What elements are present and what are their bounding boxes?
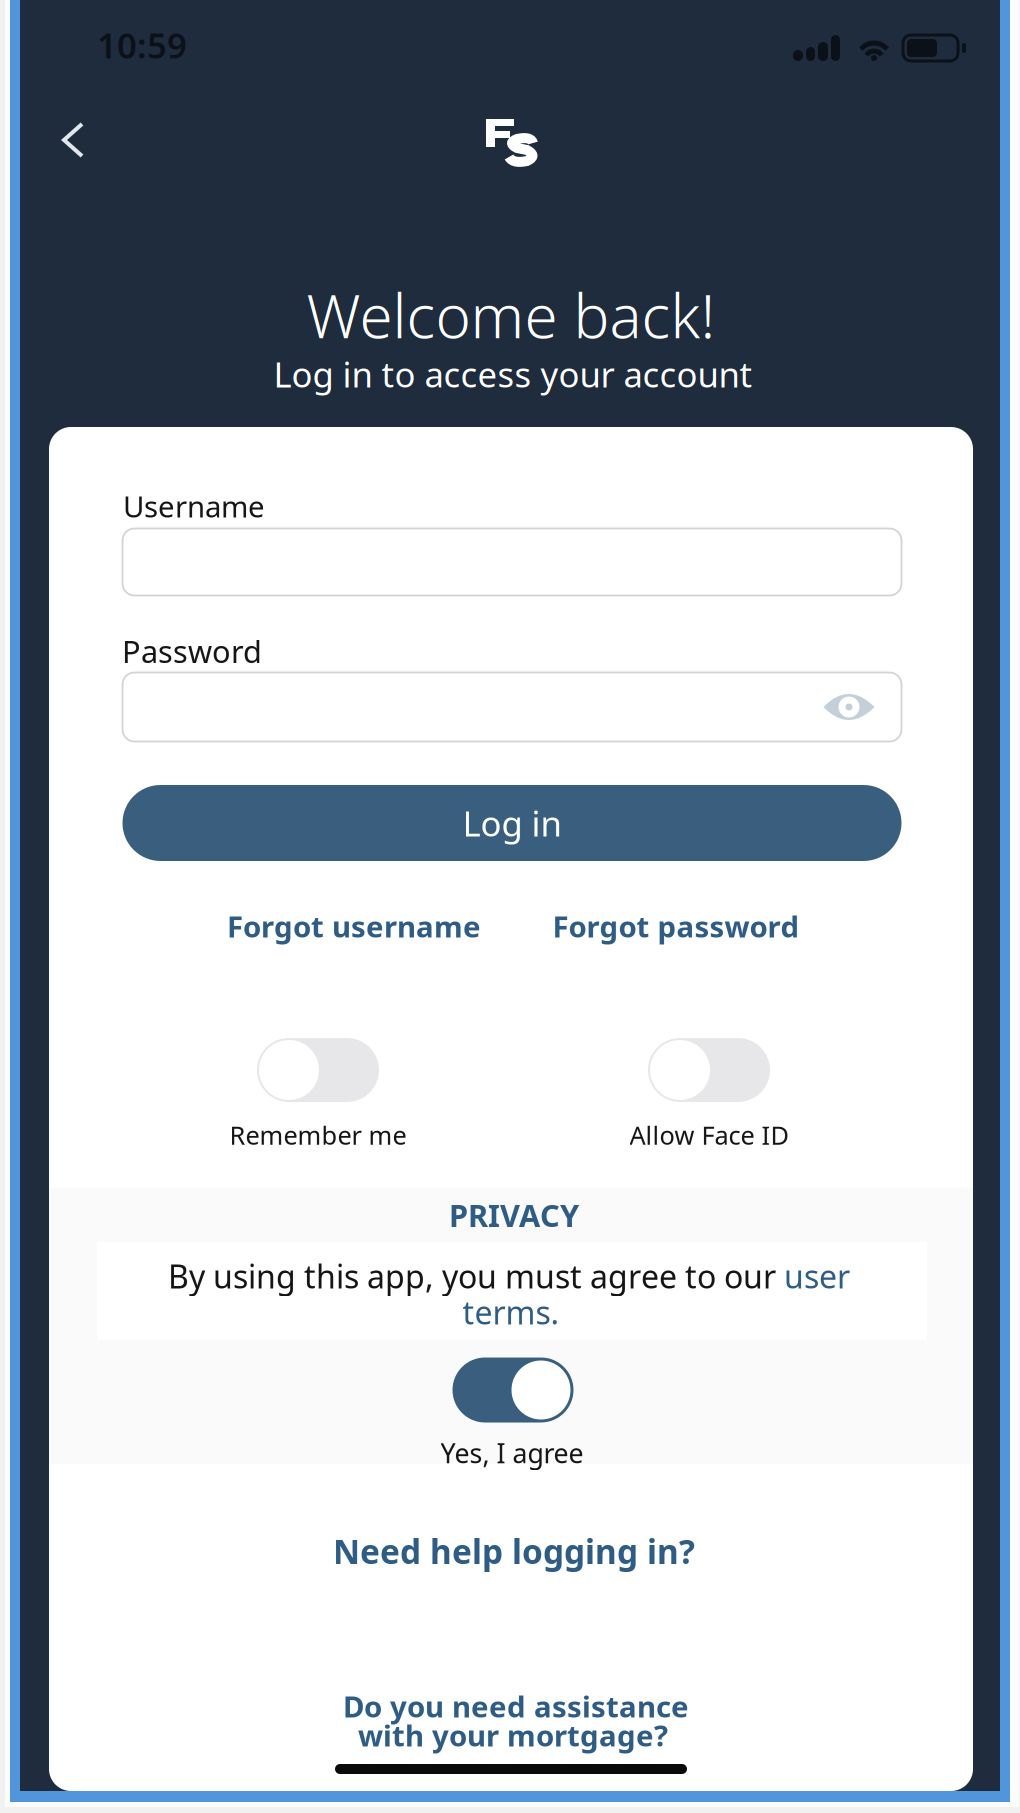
button[interactable]: Forgot username	[199, 898, 509, 954]
staticText: Forgot password	[552, 906, 799, 945]
staticText: Forgot username	[227, 906, 481, 945]
button[interactable]: Back	[37, 104, 109, 176]
staticText: Allow Face ID	[629, 1118, 788, 1152]
button[interactable]: Log in	[122, 785, 901, 861]
staticText: Username	[123, 486, 265, 525]
staticText: Need help logging in?	[333, 1529, 695, 1573]
staticText: with your mortgage?	[358, 1715, 668, 1754]
staticText: Log in	[462, 800, 561, 846]
button[interactable]: Allow Face ID	[554, 1039, 864, 1165]
staticText: Password	[122, 631, 262, 671]
button[interactable]: Yes, I agree	[357, 1359, 667, 1479]
staticText: Welcome back!	[306, 275, 715, 355]
staticText: user	[784, 1255, 850, 1297]
button[interactable]: Do you need assistance	[306, 1682, 726, 1760]
staticText: Do you need assistance	[343, 1686, 689, 1725]
staticText: Remember me	[229, 1118, 406, 1152]
staticText: Yes, I agree	[440, 1435, 583, 1471]
button[interactable]: Remember me	[163, 1039, 473, 1165]
button[interactable]: Need help logging in?	[304, 1523, 724, 1579]
staticText: Log in to access your account	[273, 351, 752, 397]
button[interactable]: Forgot password	[521, 898, 831, 954]
staticText: terms.	[462, 1291, 559, 1333]
staticText: PRIVACY	[449, 1195, 579, 1235]
staticText: By using this app, you must agree to our	[168, 1255, 784, 1297]
staticText: 10:59	[97, 22, 187, 68]
